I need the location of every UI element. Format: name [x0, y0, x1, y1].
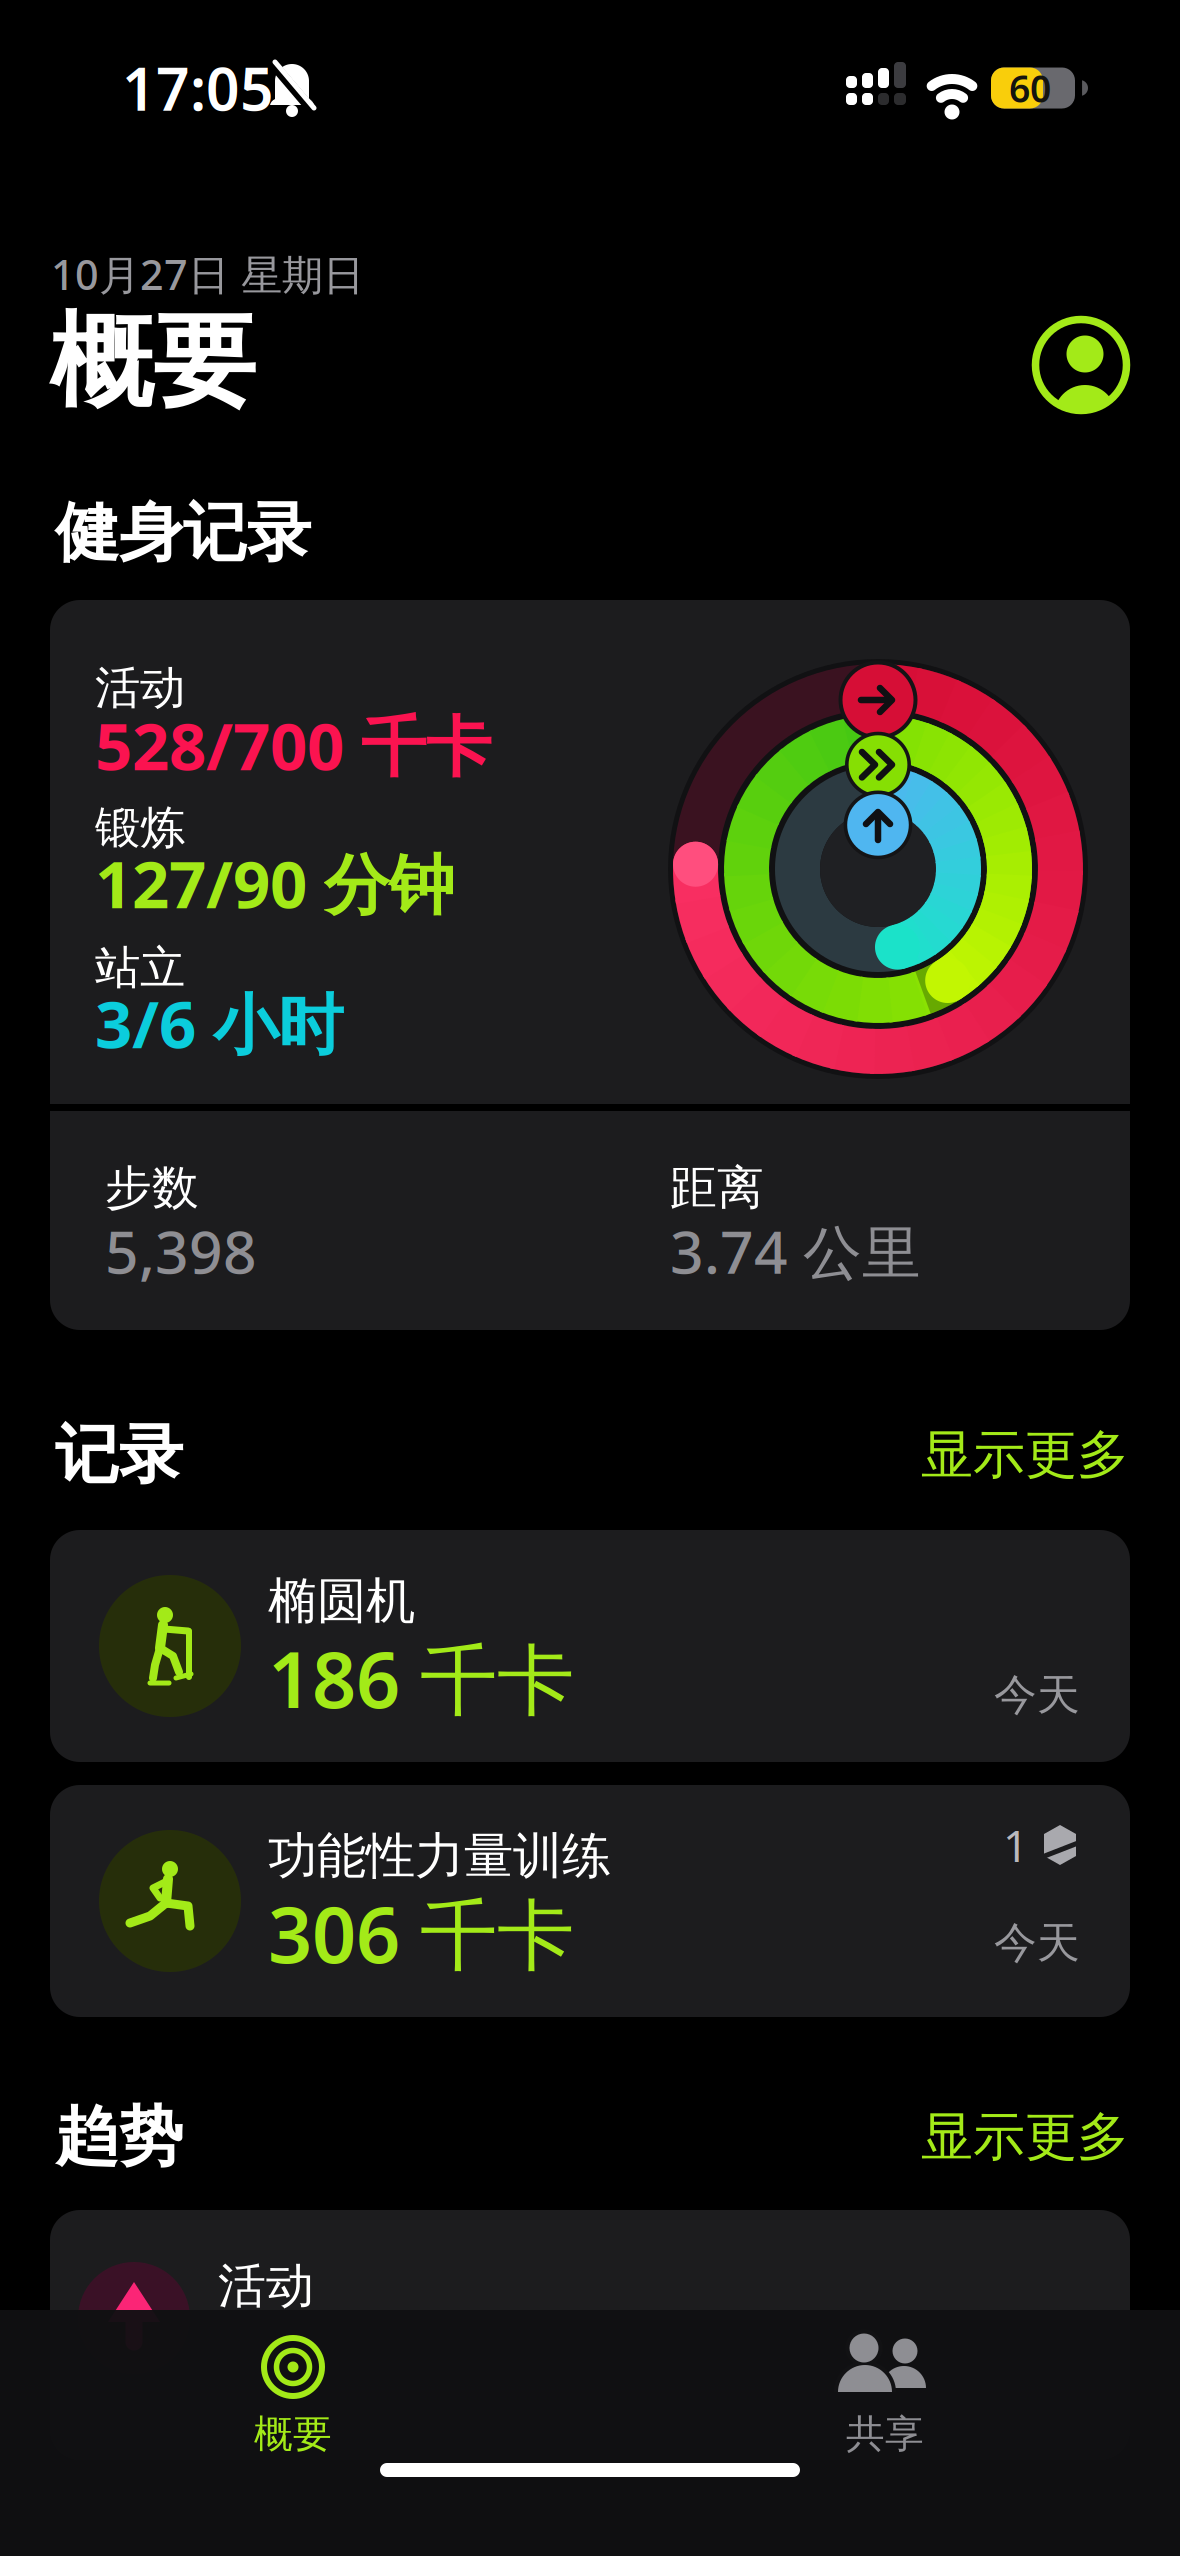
staticText: 站立 — [95, 940, 185, 996]
button[interactable]: 显示更多 — [921, 2105, 1129, 2169]
staticText: 今天 — [994, 1917, 1080, 1969]
staticText: 186 千卡 — [268, 1627, 574, 1729]
staticText: 1 — [1003, 1816, 1028, 1874]
button[interactable]: 活动 — [50, 2210, 1130, 2460]
staticText: 60 — [1009, 63, 1051, 113]
staticText: 功能性力量训练 — [268, 1826, 611, 1886]
staticText: 概要 — [254, 2410, 332, 2458]
staticText: 距离 — [670, 1159, 764, 1217]
button[interactable]: 共享 — [745, 2310, 1025, 2480]
staticText: 127/90 分钟 — [95, 840, 454, 926]
staticText: 528/700 千卡 — [95, 702, 491, 788]
button[interactable] — [1031, 315, 1131, 415]
button[interactable]: 概要 — [153, 2310, 433, 2480]
staticText: 步数 — [105, 1159, 199, 1217]
staticText: 椭圆机 — [268, 1571, 415, 1631]
staticText: 共享 — [846, 2410, 924, 2458]
staticText: 锻炼 — [95, 800, 185, 856]
button[interactable]: 显示更多 — [921, 1423, 1129, 1487]
staticText: 17:05 — [122, 49, 274, 127]
staticText: 概要 — [50, 299, 256, 425]
staticText: 健身记录 — [55, 494, 311, 572]
staticText: 3/6 小时 — [95, 980, 343, 1066]
staticText: 活动 — [95, 660, 185, 716]
staticText: 10月27日 星期日 — [51, 247, 364, 301]
staticText: 3.74 公里 — [670, 1212, 921, 1290]
staticText: 活动 — [218, 2256, 314, 2315]
staticText: 显示更多 — [921, 1423, 1129, 1487]
staticText: 显示更多 — [921, 2105, 1129, 2169]
staticText: 记录 — [55, 1416, 183, 1494]
staticText: 5,398 — [105, 1212, 257, 1290]
staticText: 趋势 — [55, 2098, 183, 2176]
button[interactable]: 活动 — [50, 600, 1130, 1330]
staticText: 306 千卡 — [268, 1882, 574, 1984]
staticText: 今天 — [994, 1669, 1080, 1721]
button[interactable]: 功能性力量训练 — [50, 1785, 1130, 2017]
button[interactable]: 椭圆机 — [50, 1530, 1130, 1762]
